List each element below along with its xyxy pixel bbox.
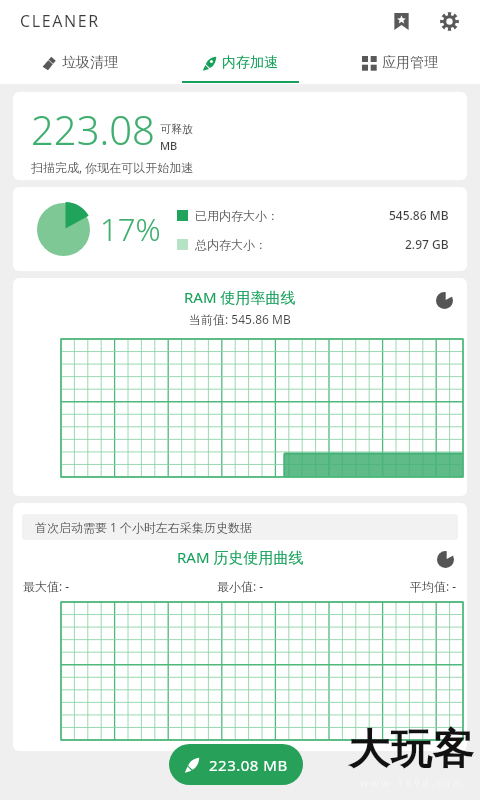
button[interactable]: 内存加速 [160,42,320,84]
staticText: 首次启动需要 1 个小时左右采集历史数据 [35,519,253,535]
staticText: RAM 历史使用曲线 [177,547,304,567]
staticText: MB [160,138,178,153]
button[interactable]: Settings [432,4,466,38]
staticText: 可释放 [160,122,193,136]
staticText: 最大值: - [23,578,70,594]
staticText: 内存加速 [222,54,278,72]
button[interactable]: Chart type [431,287,457,313]
button[interactable]: Chart type [433,547,457,571]
button[interactable]: Bookmark [384,4,418,38]
staticText: 总内存大小： [195,237,267,252]
button[interactable]: 223.08 MB [169,744,303,785]
staticText: 223.08 [31,102,155,156]
staticText: 大玩客 [348,724,474,776]
staticText: 当前值: 545.86 MB [189,311,291,327]
staticText: 223.08 MB [209,755,288,775]
button[interactable]: 垃圾清理 [0,42,160,84]
staticText: 545.86 MB [389,207,449,223]
staticText: CLEANER [20,10,100,32]
staticText: 17% [100,208,161,250]
staticText: 垃圾清理 [62,54,118,72]
staticText: 最小值: - [70,578,410,594]
staticText: 已用内存大小： [195,208,279,223]
staticText: 应用管理 [382,54,438,72]
staticText: RAM 使用率曲线 [184,287,296,307]
button[interactable]: 应用管理 [320,42,480,84]
staticText: 平均值: - [410,578,457,594]
staticText: 2.97 GB [405,236,449,252]
staticText: 扫描完成, 你现在可以开始加速 [31,159,194,175]
